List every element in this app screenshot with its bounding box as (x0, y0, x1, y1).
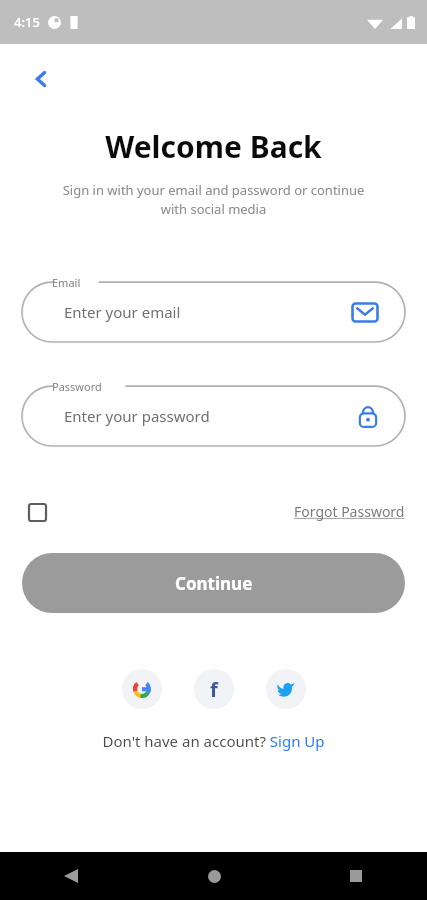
staticText: Welcome Back (0, 126, 427, 167)
staticText: Enter your password (64, 406, 210, 426)
staticText: Email (52, 275, 81, 290)
staticText: Sign in with your email and password or … (30, 181, 397, 218)
button[interactable]: Password (22, 378, 405, 446)
staticText: Enter your email (64, 302, 181, 322)
button[interactable]: Sign in with Google (122, 669, 162, 709)
button[interactable]: Don't have an account? Sign Up (0, 731, 427, 751)
button[interactable]: Remember me (22, 497, 52, 527)
staticText: Forgot Password (294, 502, 405, 521)
button[interactable]: Continue (22, 553, 405, 613)
button[interactable]: Home (199, 861, 229, 891)
button[interactable]: Sign in with Twitter (266, 669, 306, 709)
button[interactable]: Recent apps (341, 861, 371, 891)
button[interactable]: Sign in with Facebook (194, 669, 234, 709)
button[interactable]: Back (18, 56, 64, 102)
button[interactable]: Back (56, 861, 86, 891)
staticText: 4:15 (14, 13, 40, 31)
staticText: f (210, 676, 218, 703)
staticText: Password (52, 379, 102, 394)
staticText: Continue (175, 572, 253, 595)
button[interactable]: Forgot Password (294, 496, 405, 527)
staticText: Don't have an account? Sign Up (102, 731, 325, 751)
button[interactable]: Email (22, 274, 405, 342)
